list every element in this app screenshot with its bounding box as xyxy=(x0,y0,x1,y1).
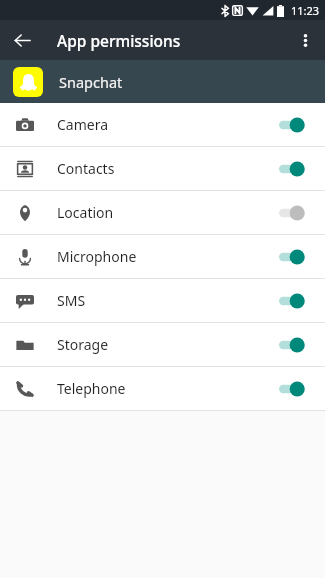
staticText: Camera xyxy=(57,115,109,134)
staticText: Location xyxy=(57,203,114,222)
button[interactable]: SMS xyxy=(0,279,325,322)
staticText: Contacts xyxy=(57,159,115,178)
button[interactable]: More options xyxy=(289,24,321,56)
staticText: App permissions xyxy=(57,30,181,51)
button[interactable]: Microphone xyxy=(0,235,325,278)
button[interactable]: Telephone xyxy=(0,367,325,410)
staticText: Microphone xyxy=(57,247,137,266)
button[interactable]: Camera xyxy=(0,103,325,146)
staticText: Storage xyxy=(57,335,109,354)
button[interactable]: Back xyxy=(6,24,38,56)
button[interactable]: Contacts xyxy=(0,147,325,190)
staticText: Snapchat xyxy=(59,72,123,92)
button[interactable]: Storage xyxy=(0,323,325,366)
button[interactable]: Snapchat xyxy=(0,60,325,103)
staticText: SMS xyxy=(57,291,86,310)
staticText: 11:23 xyxy=(291,3,320,18)
button[interactable]: Location xyxy=(0,191,325,234)
staticText: Telephone xyxy=(57,379,126,398)
